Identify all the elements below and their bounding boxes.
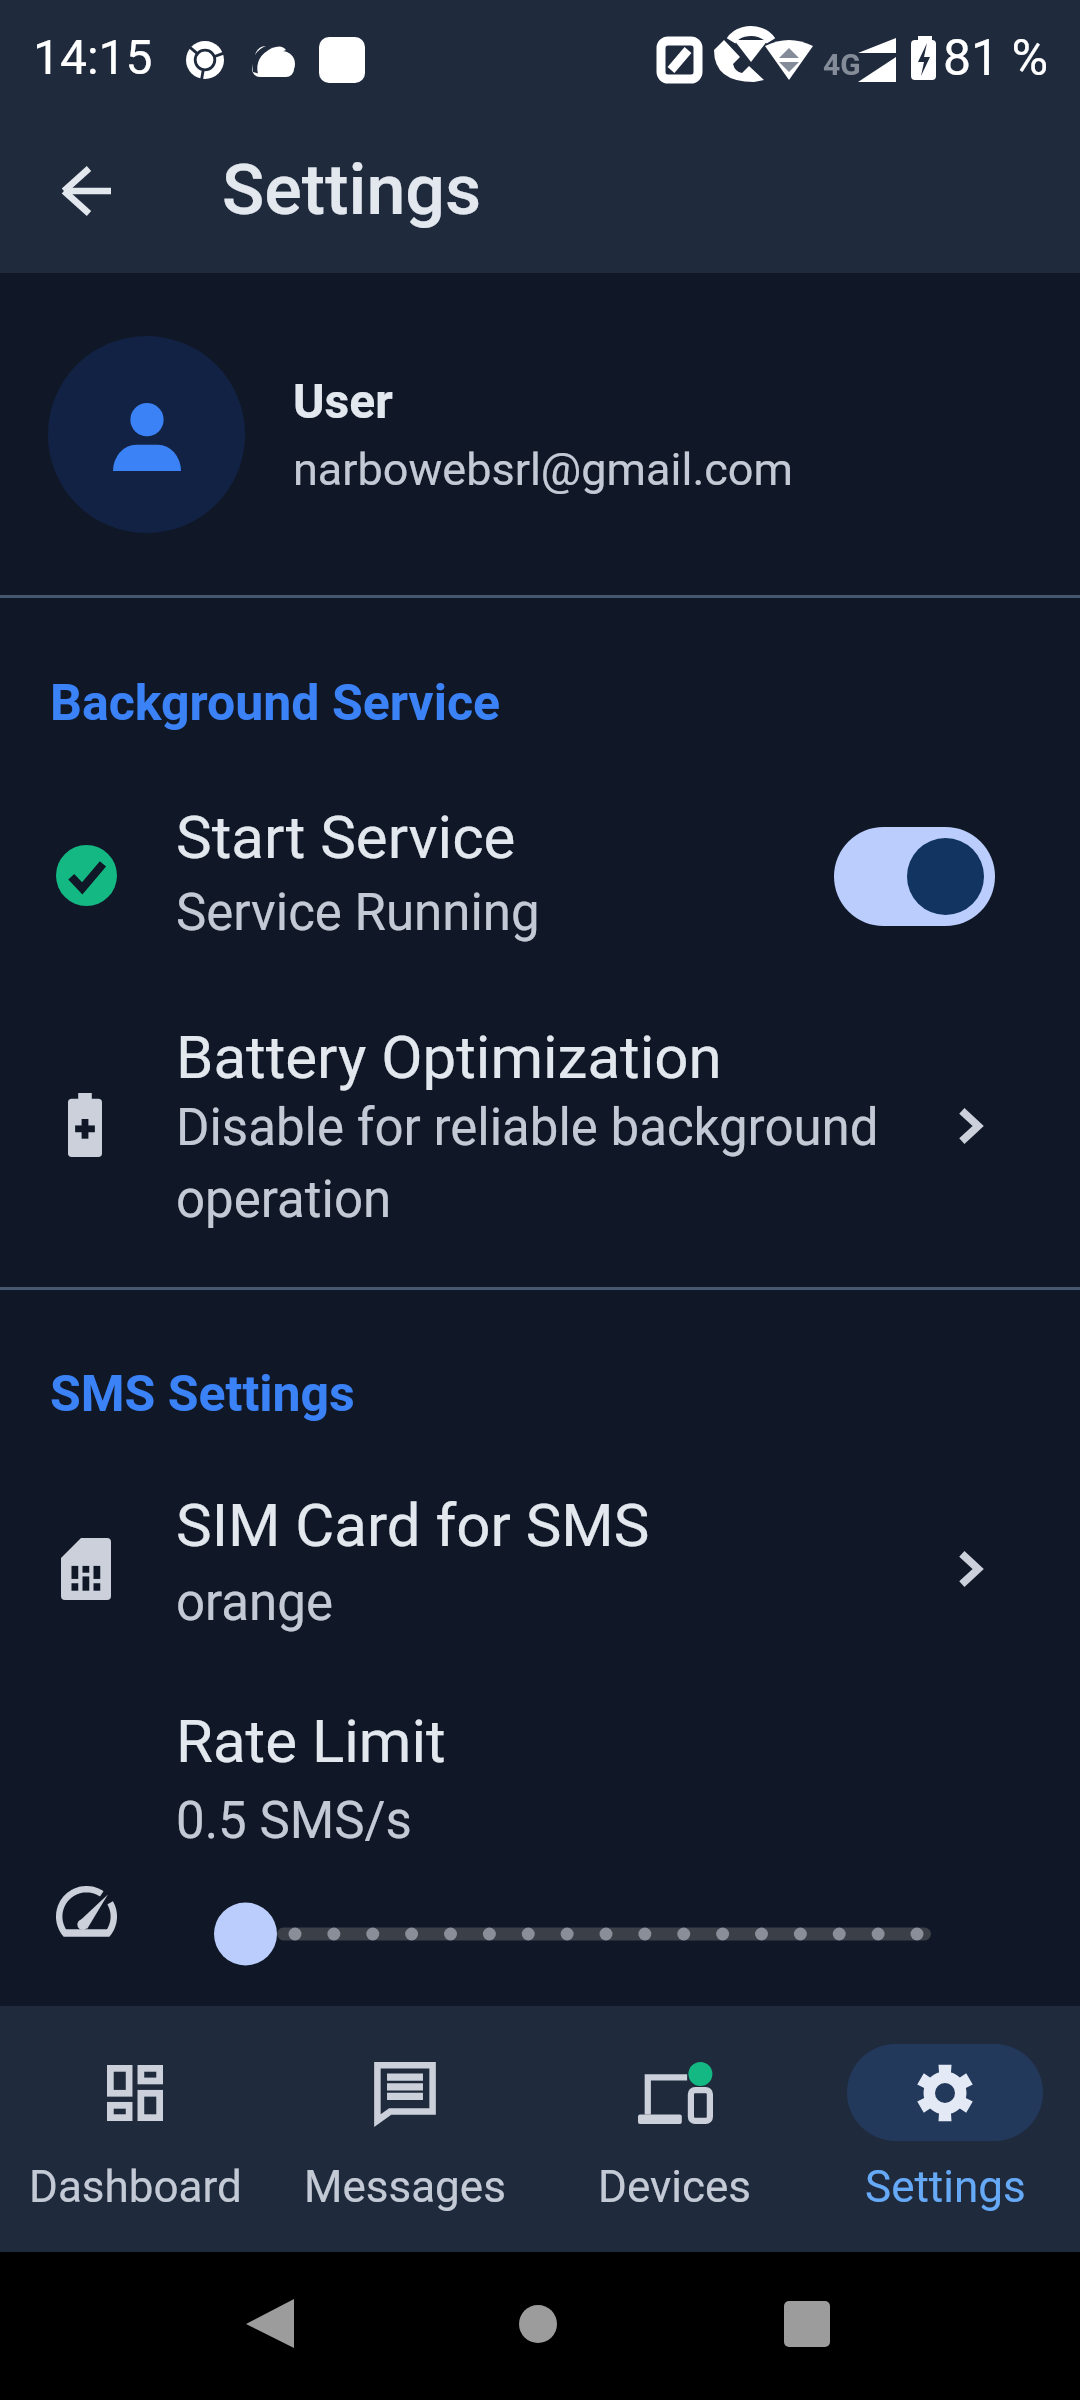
staticText: Rate Limit: [176, 1706, 446, 1776]
staticText: SMS Settings: [50, 1365, 355, 1424]
staticText: Start Service: [176, 802, 516, 872]
staticText: 14:15: [33, 29, 153, 85]
staticText: Disable for reliable background operatio…: [176, 1098, 896, 1229]
staticText: Service Running: [176, 883, 540, 943]
staticText: Settings: [222, 149, 482, 231]
staticText: 81 %: [943, 29, 1049, 88]
staticText: 4G: [823, 47, 861, 82]
button[interactable]: User: [0, 273, 1080, 596]
staticText: SIM Card for SMS: [176, 1490, 650, 1560]
button[interactable]: Settings: [810, 2006, 1080, 2252]
staticText: Devices: [598, 2161, 752, 2213]
button[interactable]: Back: [31, 136, 141, 246]
button[interactable]: Messages: [270, 2006, 540, 2252]
button[interactable]: Start Service toggle: [834, 827, 995, 926]
staticText: Battery Optimization: [176, 1022, 722, 1092]
staticText: Settings: [865, 2161, 1026, 2213]
button[interactable]: Start Service: [0, 780, 1080, 970]
button[interactable]: Devices: [540, 2006, 810, 2252]
staticText: Dashboard: [29, 2161, 242, 2213]
staticText: 0.5 SMS/s: [176, 1791, 412, 1851]
button[interactable]: Battery Optimization: [0, 1000, 1080, 1287]
button[interactable]: Dashboard: [0, 2006, 270, 2252]
staticText: Messages: [304, 2161, 506, 2213]
staticText: Background Service: [50, 674, 501, 733]
staticText: User: [293, 373, 393, 429]
staticText: orange: [176, 1573, 333, 1633]
button[interactable]: SIM Card for SMS: [0, 1470, 1080, 1660]
button[interactable]: Rate Limit: [0, 1700, 1080, 2000]
staticText: narbowebsrl@gmail.com: [293, 443, 793, 496]
